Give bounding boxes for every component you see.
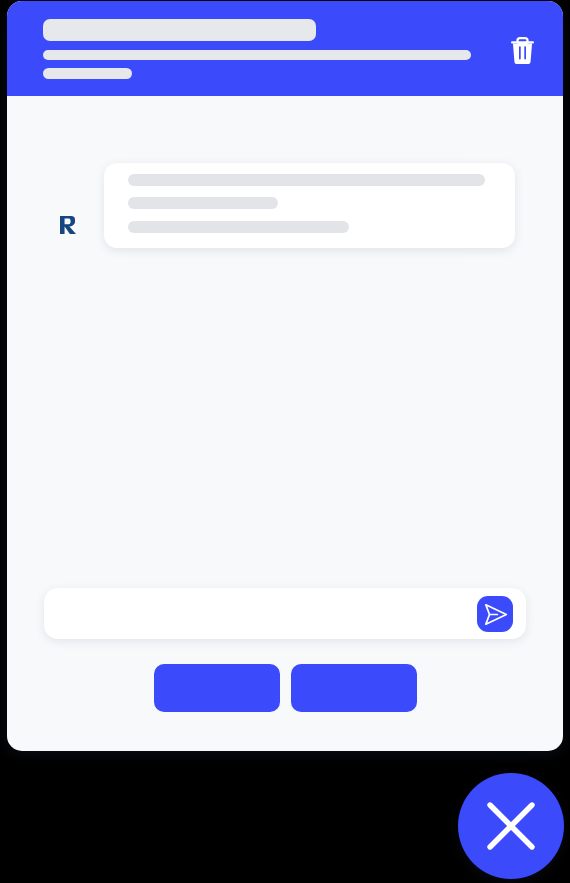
- button[interactable]: Quick reply one: [154, 664, 280, 712]
- button[interactable]: Send message: [477, 596, 513, 632]
- button[interactable]: Quick reply two: [291, 664, 417, 712]
- button[interactable]: Assistant avatar: [44, 201, 89, 246]
- button[interactable]: Type a message: [44, 588, 526, 639]
- button[interactable]: Delete conversation: [498, 26, 546, 74]
- button[interactable]: [104, 163, 515, 248]
- button[interactable]: Close chat: [458, 773, 564, 879]
